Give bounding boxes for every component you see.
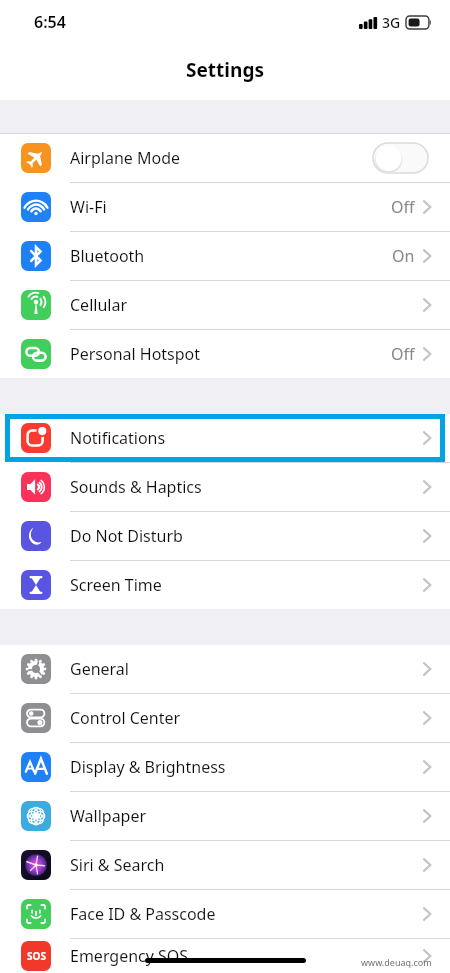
staticText: Airplane Mode [70, 147, 181, 169]
button[interactable]: Do Not Disturb [0, 512, 450, 560]
staticText: www.deuaq.com [361, 956, 432, 968]
staticText: SOS [27, 949, 46, 963]
button[interactable]: General [0, 645, 450, 693]
staticText: Notifications [70, 427, 166, 449]
button[interactable]: Screen Time [0, 561, 450, 609]
button[interactable]: Face ID & Passcode [0, 890, 450, 938]
button[interactable]: Display & Brightness [0, 743, 450, 791]
staticText: Face ID & Passcode [70, 903, 216, 925]
staticText: General [70, 658, 129, 680]
staticText: Control Center [70, 707, 181, 729]
button[interactable]: Sounds & Haptics [0, 463, 450, 511]
button[interactable]: Notifications [0, 414, 450, 462]
button[interactable]: SOS [0, 939, 450, 973]
staticText: Cellular [70, 294, 127, 316]
button[interactable]: Control Center [0, 694, 450, 742]
staticText: Wallpaper [70, 805, 147, 827]
staticText: Off [391, 343, 415, 365]
button[interactable]: Wallpaper [0, 792, 450, 840]
staticText: Emergency SOS [70, 945, 189, 967]
button[interactable]: Cellular [0, 281, 450, 329]
staticText: 6:54 [34, 11, 66, 33]
staticText: Wi-Fi [70, 196, 107, 218]
staticText: Sounds & Haptics [70, 476, 202, 498]
staticText: On [392, 245, 415, 267]
button[interactable]: Airplane Mode [0, 134, 450, 182]
staticText: 3G [382, 13, 401, 32]
staticText: Settings [186, 57, 264, 83]
staticText: Off [391, 196, 415, 218]
button[interactable]: Wi-Fi [0, 183, 450, 231]
button[interactable]: Bluetooth [0, 232, 450, 280]
staticText: Do Not Disturb [70, 525, 183, 547]
button[interactable]: Personal Hotspot [0, 330, 450, 378]
staticText: Bluetooth [70, 245, 145, 267]
staticText: Display & Brightness [70, 756, 226, 778]
staticText: Siri & Search [70, 854, 165, 876]
staticText: Personal Hotspot [70, 343, 201, 365]
button[interactable]: Siri & Search [0, 841, 450, 889]
staticText: Screen Time [70, 574, 162, 596]
button[interactable]: Airplane Mode toggle [373, 143, 428, 173]
